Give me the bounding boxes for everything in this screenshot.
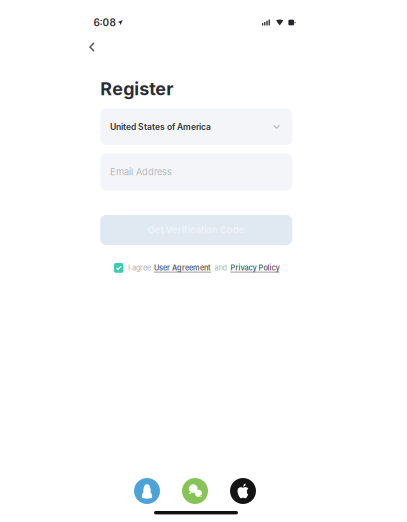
staticText: User Agreement: [154, 263, 211, 272]
staticText: I agree: [128, 263, 151, 272]
staticText: United States of America: [110, 122, 211, 132]
staticText: Get Verification Code: [148, 224, 245, 236]
staticText: 6:08: [93, 16, 115, 29]
staticText: Privacy Policy: [230, 263, 279, 272]
staticText: Email Address: [110, 166, 172, 177]
button[interactable]: Email Address: [100, 154, 292, 190]
button[interactable]: Sign in with Apple: [230, 478, 256, 504]
button[interactable]: Sign in with QQ: [134, 478, 160, 504]
button[interactable]: Back: [83, 38, 101, 56]
staticText: Register: [100, 78, 173, 100]
button[interactable]: Sign in with WeChat: [182, 478, 208, 504]
button[interactable]: Privacy Policy: [230, 263, 279, 272]
button[interactable]: User Agreement: [154, 263, 211, 272]
button[interactable]: Agree to terms: [114, 263, 123, 273]
staticText: and: [214, 263, 226, 272]
button[interactable]: United States of America: [100, 108, 292, 145]
button[interactable]: Get Verification Code: [100, 215, 292, 245]
